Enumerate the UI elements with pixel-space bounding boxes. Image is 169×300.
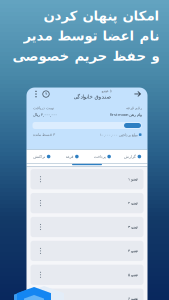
- button[interactable]: عضو ۶: [30, 289, 143, 300]
- staticText: قرعه: [65, 154, 73, 159]
- button[interactable]: عضو ۴: [30, 241, 143, 261]
- staticText: گزارش: [124, 154, 136, 159]
- button[interactable]: History: [40, 88, 51, 100]
- button[interactable]: عضو ۳: [30, 217, 143, 237]
- staticText: عضو ۵: [127, 272, 137, 277]
- staticText: عضو ۶: [127, 296, 137, 300]
- button[interactable]: عضو ۲: [30, 193, 143, 213]
- staticText: عضو ۴: [127, 249, 137, 253]
- staticText: پرداخت: [93, 154, 105, 159]
- button[interactable]: عضو ۵: [30, 265, 143, 285]
- staticText: مبلغ پرداختی ۱۰,۰۰۰,۰۰۰: [99, 132, 137, 137]
- button[interactable]: گزارش: [117, 150, 147, 164]
- staticText: نوبت دریافت: [32, 105, 53, 110]
- staticText: ۲,۰۰۰,۰۰۰ ریال: [32, 112, 56, 117]
- staticText: وام رهن first moon: [109, 112, 141, 117]
- staticText: امکان پنهان کردن: [43, 8, 159, 23]
- button[interactable]: Back: [132, 88, 142, 100]
- staticText: ۳ قسط مانده: [32, 132, 54, 137]
- staticText: نام اعضا توسط مدیر: [23, 28, 159, 43]
- button[interactable]: تراکنش: [26, 150, 57, 164]
- staticText: ۵ عضو: [101, 88, 111, 93]
- staticText: تراکنش: [33, 154, 45, 159]
- staticText: عضو ۲: [127, 201, 137, 205]
- staticText: صندوق خانوادگی: [73, 93, 111, 100]
- staticText: رقم قرعه: [125, 105, 141, 110]
- staticText: و حفظ حریم خصوصی: [12, 49, 159, 64]
- button[interactable]: More options: [31, 88, 40, 100]
- button[interactable]: عضو ۱: [30, 169, 143, 189]
- button[interactable]: قرعه: [57, 150, 87, 164]
- staticText: عضو ۱: [127, 177, 137, 181]
- staticText: عضو ۳: [127, 225, 137, 229]
- button[interactable]: پرداخت: [87, 150, 117, 164]
